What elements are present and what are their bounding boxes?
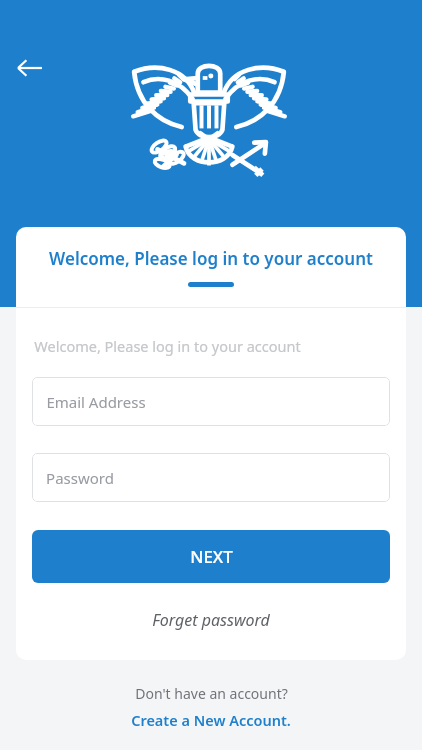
button[interactable]: Password — [32, 453, 390, 502]
button[interactable]: Forget password — [16, 601, 406, 639]
staticText: Email Address — [46, 392, 146, 412]
staticText: Welcome, Please log in to your account — [49, 247, 373, 270]
staticText: Password — [46, 468, 114, 488]
staticText: Welcome, Please log in to your account — [34, 336, 301, 356]
staticText: Create a New Account. — [131, 710, 291, 730]
button[interactable]: Create a New Account. — [131, 710, 291, 730]
button[interactable]: NEXT — [32, 530, 390, 583]
staticText: Don't have an account? — [135, 684, 288, 703]
staticText: NEXT — [190, 545, 233, 568]
staticText: Forget password — [152, 609, 270, 631]
button[interactable]: Back — [8, 46, 52, 90]
button[interactable]: Email Address — [32, 377, 390, 426]
